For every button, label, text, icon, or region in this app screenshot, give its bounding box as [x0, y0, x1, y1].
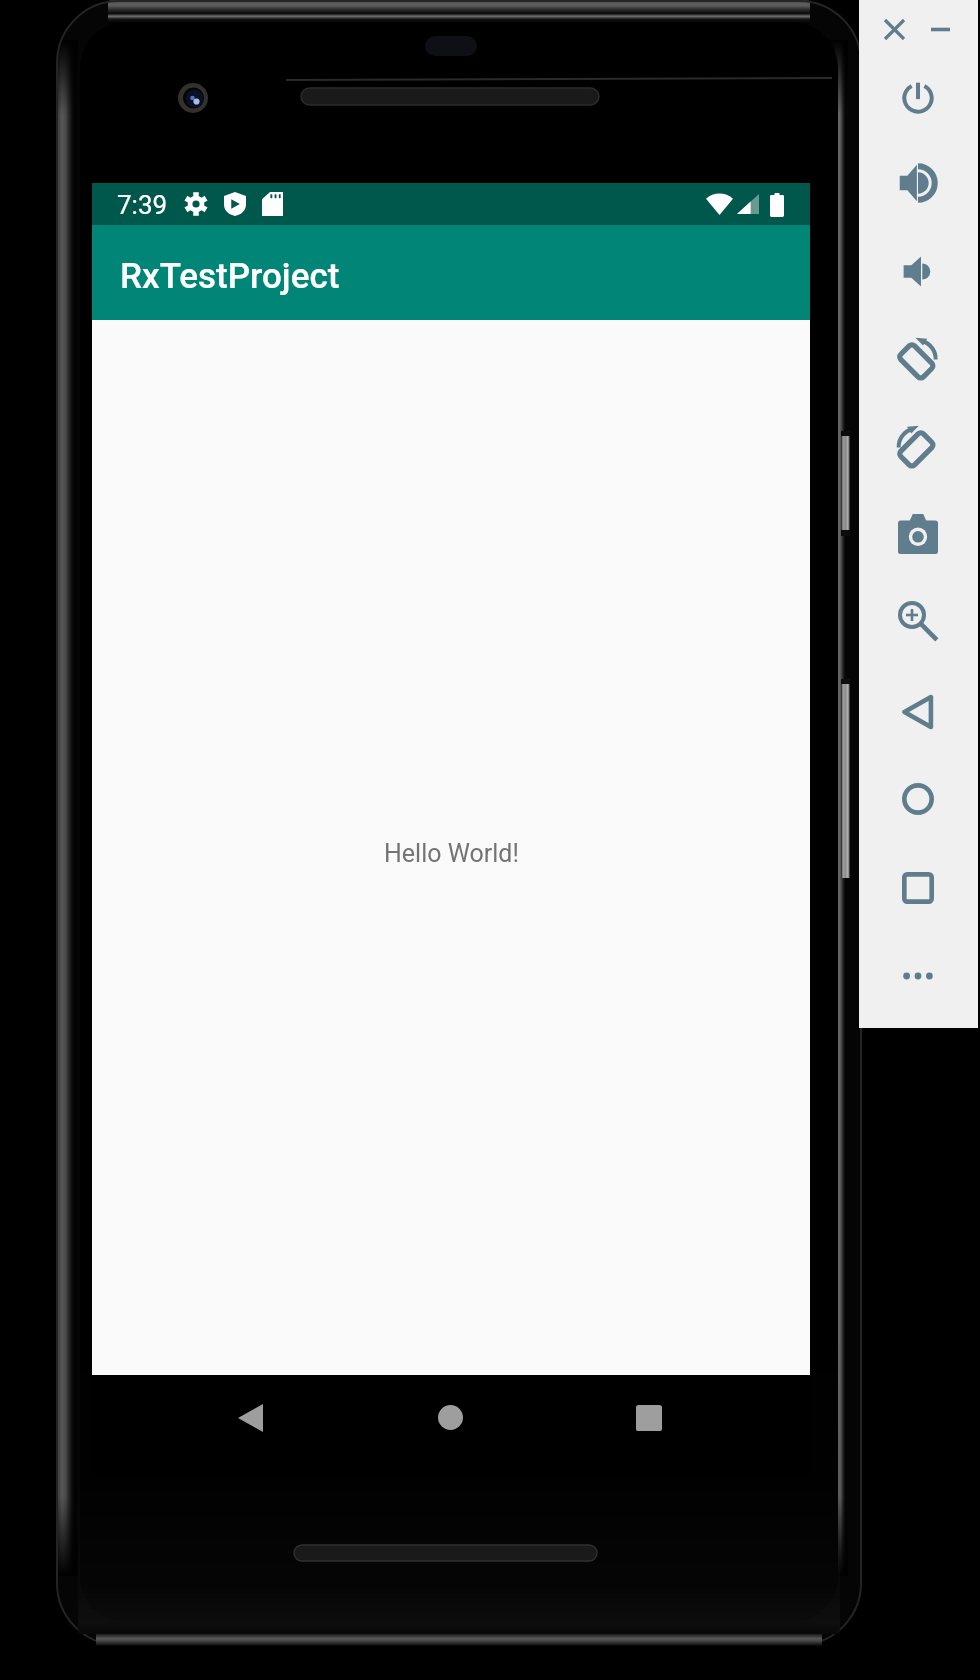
button[interactable]: Rotate left — [889, 417, 947, 475]
button[interactable]: Volume down — [889, 242, 947, 300]
button[interactable]: Close — [873, 8, 915, 50]
button[interactable]: Back — [220, 1388, 280, 1448]
button[interactable]: Home — [889, 770, 947, 828]
button[interactable]: RxTestProject — [92, 225, 810, 320]
button[interactable]: More — [889, 947, 947, 1005]
staticText: Hello World! — [384, 839, 519, 868]
button[interactable]: Home — [421, 1388, 480, 1447]
button[interactable]: Minimize — [919, 8, 961, 50]
button[interactable]: Back — [889, 683, 947, 741]
button[interactable]: Volume up — [889, 154, 947, 212]
button[interactable]: Rotate right — [889, 329, 947, 387]
button[interactable]: Power — [889, 69, 947, 127]
staticText: RxTestProject — [120, 256, 340, 297]
button[interactable]: Take screenshot — [889, 505, 947, 563]
button[interactable]: Zoom — [889, 592, 947, 650]
button[interactable]: Recent apps — [619, 1388, 679, 1448]
staticText: 7:39 — [117, 190, 168, 220]
button[interactable]: Overview — [889, 859, 947, 917]
